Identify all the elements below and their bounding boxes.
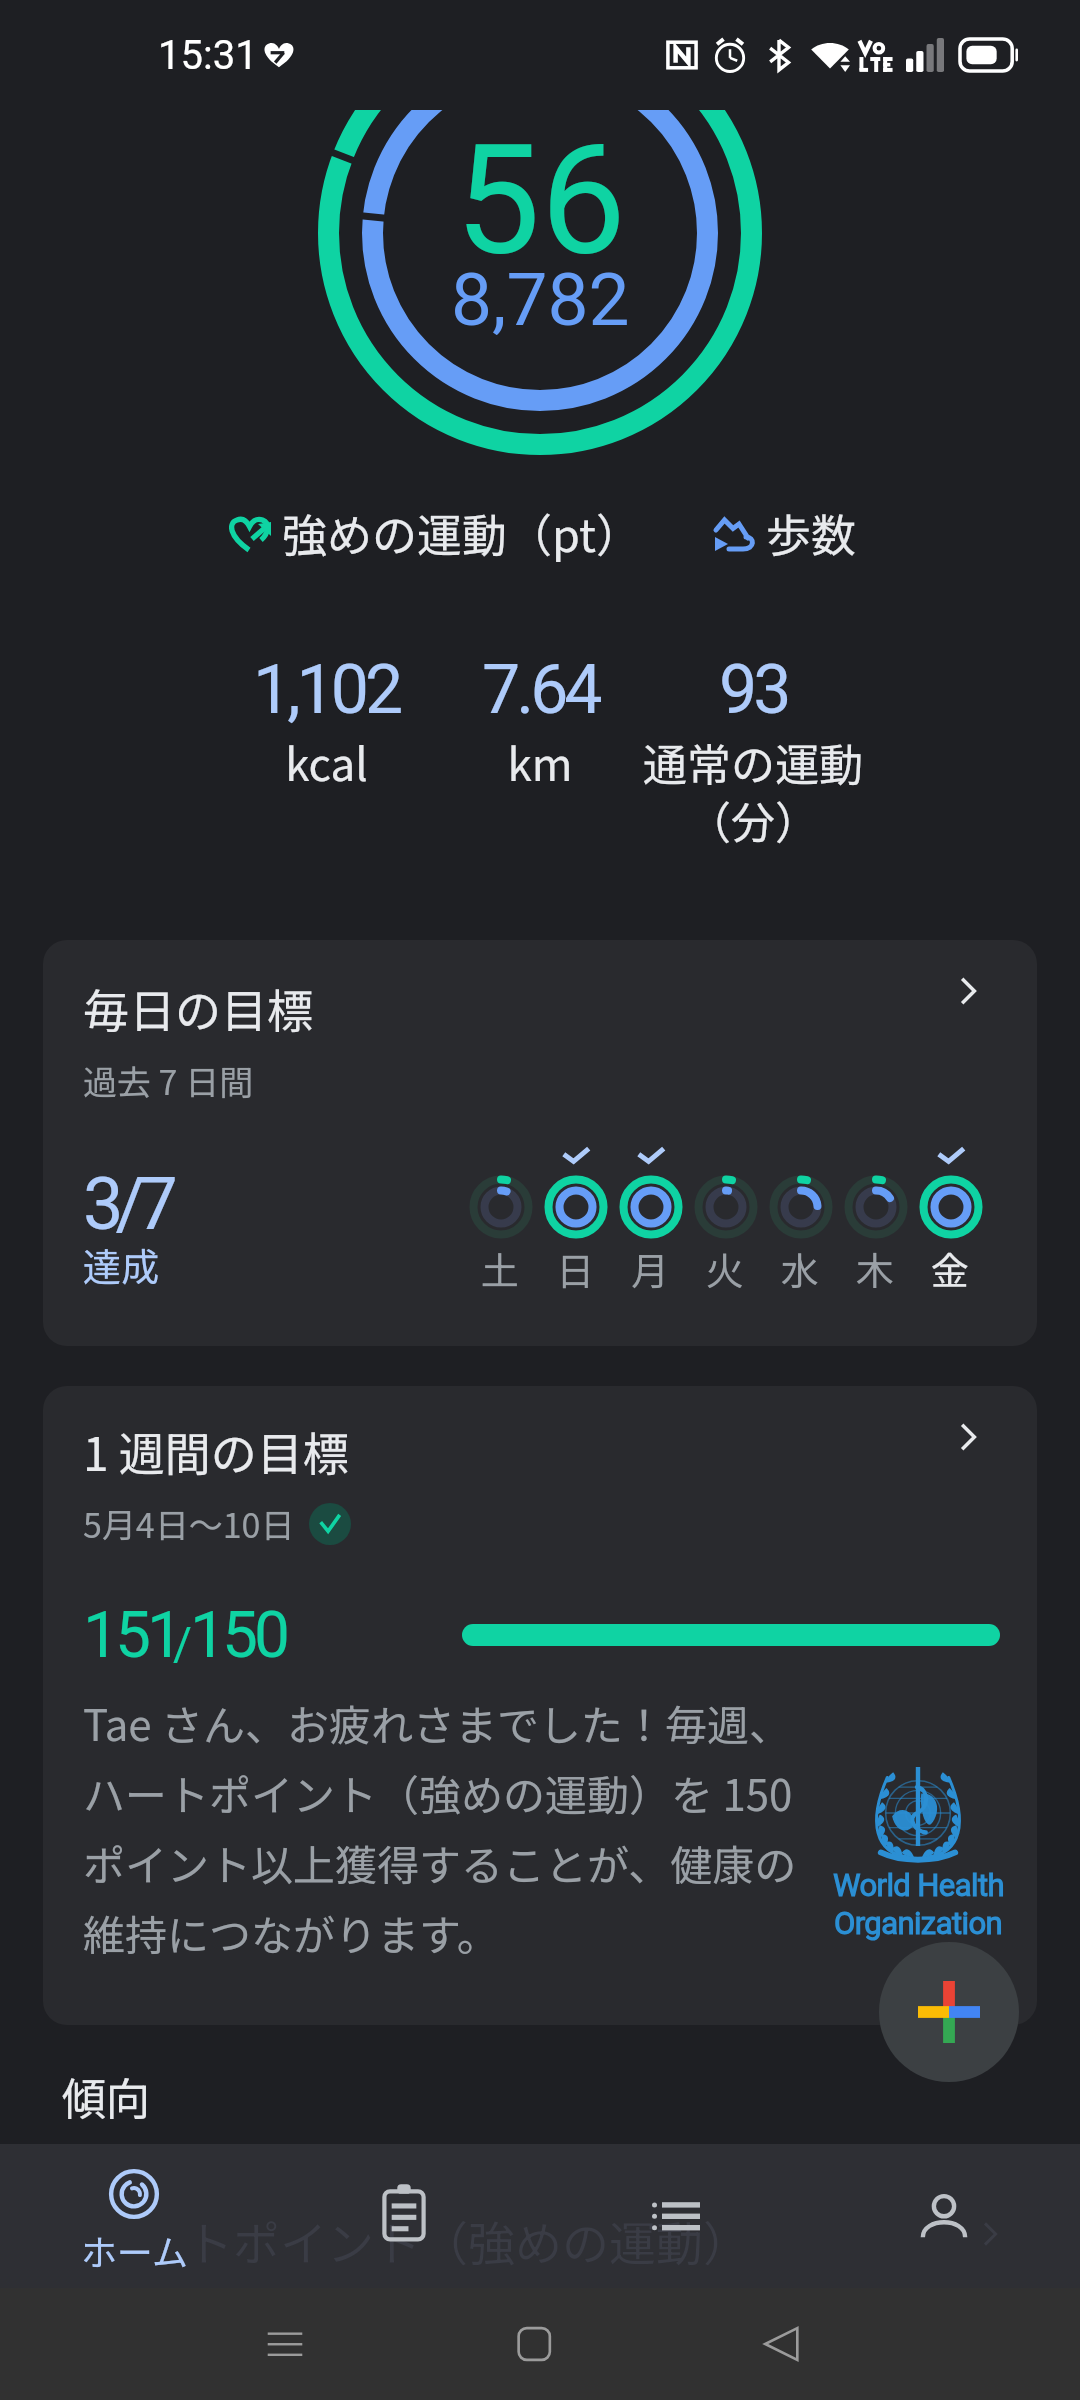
staticText: 水 xyxy=(781,1241,820,1296)
staticText: 93 xyxy=(719,650,788,730)
staticText: 過去 7 日間 xyxy=(83,1056,254,1105)
staticText: 歩数 xyxy=(766,500,857,565)
staticText: 達成 xyxy=(83,1237,160,1292)
staticText: 日 xyxy=(556,1241,595,1296)
button[interactable]: Recents xyxy=(261,2320,309,2368)
staticText: 7.64 xyxy=(482,650,599,730)
staticText: 150 xyxy=(190,1598,286,1673)
staticText: 3/7 xyxy=(83,1162,170,1246)
staticText: World Health xyxy=(833,1867,1004,1903)
button[interactable]: Home xyxy=(54,2144,214,2288)
button[interactable]: Back xyxy=(757,2320,805,2368)
staticText: 1 週間の目標 xyxy=(83,1418,349,1485)
button[interactable]: 1 週間の目標 xyxy=(43,1386,1037,2025)
staticText: kcal xyxy=(285,730,368,794)
staticText: Organization xyxy=(834,1905,1002,1941)
staticText: 月 xyxy=(631,1241,670,1296)
other: Open daily goal xyxy=(945,968,991,1014)
staticText: 火 xyxy=(706,1241,745,1296)
staticText: 15:31 xyxy=(158,32,258,79)
staticText: Tae さん、お疲れさまでした！毎週、 ハートポイント（強めの運動）を 150 … xyxy=(83,1692,823,1963)
staticText: / xyxy=(173,1617,192,1671)
button[interactable]: Journal xyxy=(324,2144,484,2288)
staticText: 5月4日〜10日 xyxy=(83,1499,295,1548)
button[interactable]: Home xyxy=(510,2320,558,2368)
staticText: トポイント（強めの運動） xyxy=(186,2206,750,2274)
button[interactable]: Profile xyxy=(864,2144,1024,2288)
staticText: 強めの運動（pt） xyxy=(282,500,641,565)
staticText: 傾向 xyxy=(62,2064,150,2128)
other: Open weekly goal xyxy=(945,1414,991,1460)
staticText: 土 xyxy=(481,1241,520,1296)
staticText: 金 xyxy=(931,1241,970,1296)
button[interactable]: Add activity xyxy=(879,1942,1019,2082)
staticText: 通常の運動 （分） xyxy=(643,730,863,852)
staticText: 8,782 xyxy=(451,257,630,343)
staticText: 1,102 xyxy=(253,650,400,730)
button[interactable]: 毎日の目標 xyxy=(43,940,1037,1346)
button[interactable]: Browse xyxy=(595,2144,755,2288)
staticText: ホーム xyxy=(81,2224,188,2276)
staticText: 木 xyxy=(856,1241,895,1296)
staticText: 56 xyxy=(455,112,626,290)
staticText: km xyxy=(507,730,573,794)
staticText: 151 xyxy=(83,1598,179,1673)
staticText: 毎日の目標 xyxy=(83,975,313,1042)
